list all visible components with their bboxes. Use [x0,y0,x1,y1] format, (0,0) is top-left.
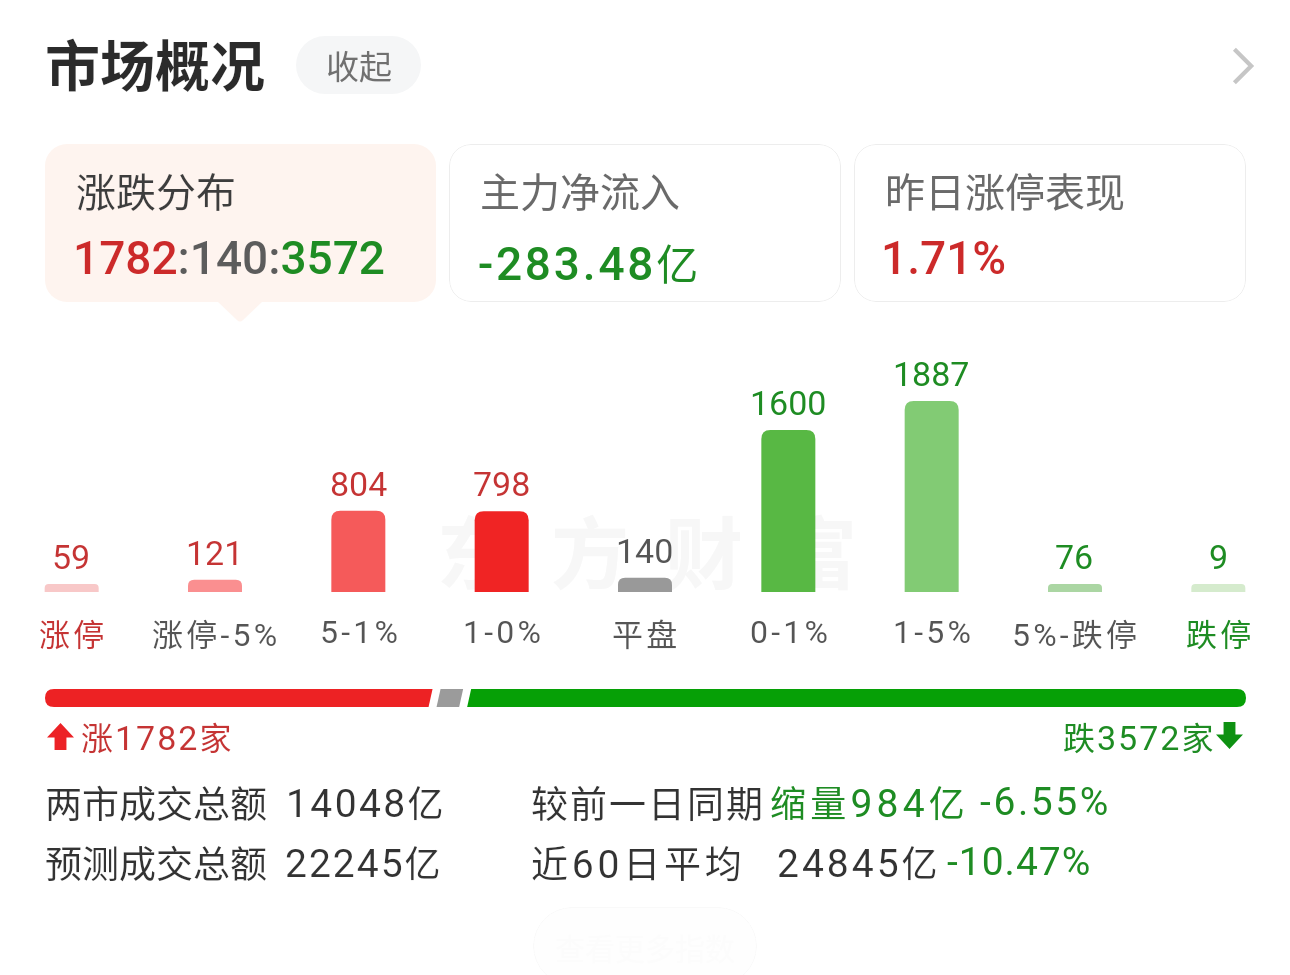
staticText: 较前一日同期 [531,775,765,829]
staticText: 14048亿 [286,775,446,827]
staticText: -283.48亿 [478,231,702,292]
staticText: 预测成交总额 [45,835,267,889]
staticText: 9 [1209,537,1229,577]
staticText: 1-0% [463,613,545,651]
staticText: 涨停 [39,610,108,654]
staticText: 59 [52,537,91,577]
staticText: 近60日平均 [531,835,746,889]
staticText: 1-5% [893,613,975,651]
staticText: 1.71% [881,231,1007,285]
staticText: 缩量984亿 [770,775,969,827]
staticText: -6.55% [980,779,1111,825]
staticText: 市场概况 [45,22,266,102]
staticText: 804 [330,464,388,504]
button[interactable] [449,144,841,302]
staticText: 涨1782家 [81,713,234,759]
staticText: 5-1% [320,613,402,651]
staticText: 121 [186,533,244,573]
staticText: 东方财富 [437,493,894,606]
button[interactable] [854,144,1246,302]
staticText: 22245亿 [285,835,443,887]
staticText: 1782:140:3572 [73,231,385,285]
staticText: 798 [473,464,531,504]
staticText: 主力净流入 [480,161,680,219]
staticText: 两市成交总额 [45,775,267,829]
button[interactable] [45,714,225,758]
staticText: 昨日涨停表现 [885,161,1125,219]
staticText: 5%-跌停 [1012,610,1141,654]
staticText: 跌3572家 [1063,713,1216,759]
button[interactable]: 收起 [296,36,421,94]
staticText: 1887 [893,354,970,394]
staticText: 76 [1055,537,1094,577]
staticText: 跌停 [1186,610,1255,654]
staticText: 1600 [750,383,827,423]
button[interactable] [45,144,436,302]
staticText: 平盘 [612,610,681,654]
staticText: -10.47% [947,839,1092,885]
button[interactable]: 展开市场概况 [1191,21,1281,111]
staticText: 收起 [326,41,392,89]
staticText: 24845亿 [777,835,941,887]
staticText: 0-1% [750,613,832,651]
staticText: 涨跌分布 [76,161,236,219]
staticText: 涨停-5% [152,610,281,654]
staticText: 140 [616,531,674,571]
